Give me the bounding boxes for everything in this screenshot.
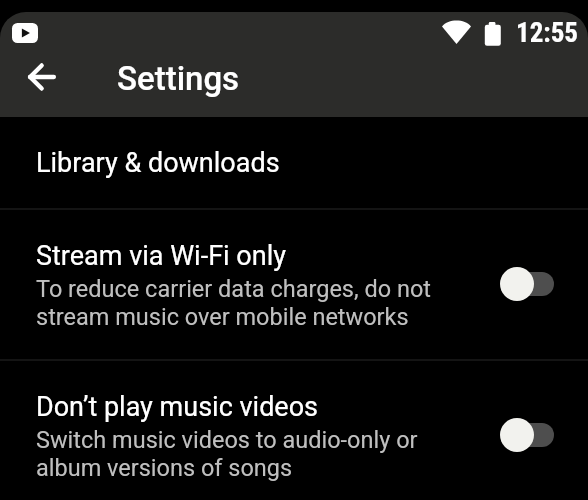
staticText: Don’t play music videos <box>36 391 319 423</box>
staticText: Switch music videos to audio-only or alb… <box>36 426 418 482</box>
other: Battery full <box>484 20 502 46</box>
staticText: 12:55 <box>516 17 578 49</box>
button[interactable]: Stream via Wi-Fi only <box>0 210 588 359</box>
button[interactable]: Library & downloads <box>0 117 588 208</box>
other: YouTube Music <box>12 23 38 43</box>
staticText: Stream via Wi-Fi only <box>36 240 286 272</box>
staticText: Library & downloads <box>36 147 280 179</box>
staticText: To reduce carrier data charges, do not s… <box>36 275 432 331</box>
staticText: Settings <box>117 59 240 98</box>
other: Wi-Fi <box>442 22 471 44</box>
button[interactable]: Don’t play music videos <box>0 361 588 500</box>
button[interactable]: Toggle: Stream via Wi-Fi only <box>495 260 559 308</box>
button[interactable]: Toggle: Don’t play music videos <box>495 411 559 459</box>
button[interactable]: Navigate back <box>14 49 70 105</box>
